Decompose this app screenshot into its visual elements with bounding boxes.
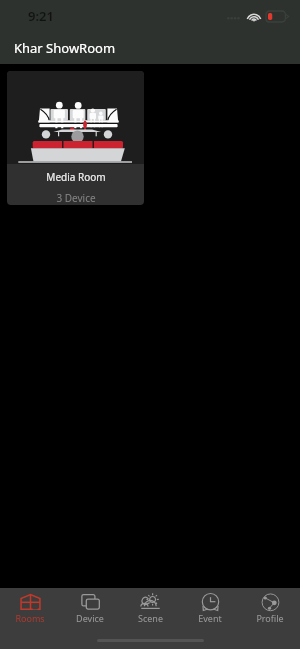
button[interactable]: Device	[60, 588, 120, 624]
staticText: Media Room	[46, 170, 106, 184]
staticText: Scene	[138, 612, 163, 624]
staticText: Khar ShowRoom	[14, 39, 116, 57]
button[interactable]: Profile	[240, 588, 300, 624]
staticText: Device	[76, 612, 104, 624]
staticText: Profile	[256, 612, 284, 624]
button[interactable]: Event	[180, 588, 240, 624]
staticText: 9:21	[28, 7, 54, 25]
staticText: Rooms	[15, 612, 45, 624]
staticText: 3 Device	[56, 191, 96, 205]
button[interactable]: Rooms	[0, 588, 60, 624]
staticText: Event	[198, 612, 222, 624]
button[interactable]: Media Room	[7, 71, 144, 205]
button[interactable]: Scene	[120, 588, 180, 624]
